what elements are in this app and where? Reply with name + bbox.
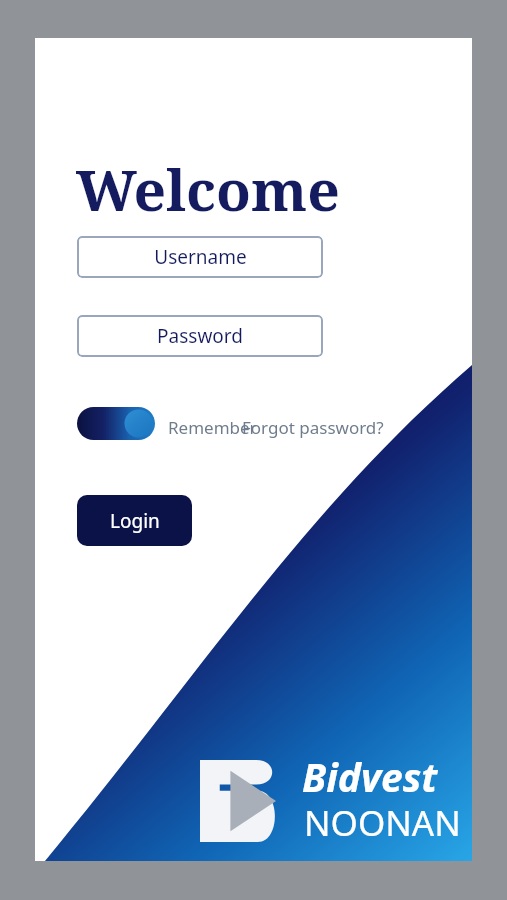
staticText: Welcome (76, 150, 340, 228)
button[interactable]: Password (77, 315, 323, 357)
staticText: Remember (168, 416, 257, 439)
button[interactable]: Login (77, 495, 192, 546)
staticText: NOONAN (304, 799, 461, 847)
button[interactable]: Username (77, 236, 323, 278)
button[interactable]: Forgot password? (242, 416, 384, 439)
staticText: Bidvest (302, 750, 438, 803)
staticText: Password (157, 323, 243, 349)
staticText: Login (110, 508, 160, 534)
staticText: Forgot password? (242, 416, 384, 439)
button[interactable]: Remember me toggle (77, 407, 155, 440)
button[interactable]: Remember (168, 416, 257, 439)
staticText: Username (154, 244, 247, 270)
